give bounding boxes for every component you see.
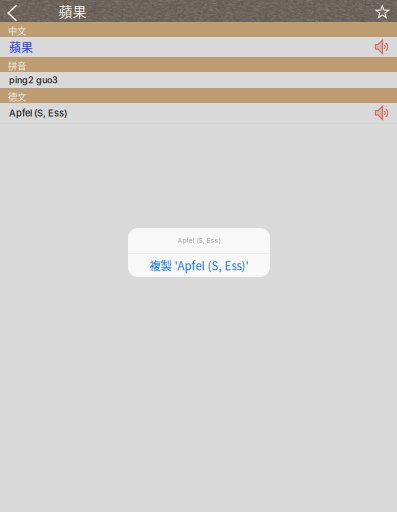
staticText: Apfel (S, Ess)	[177, 236, 220, 245]
button[interactable]: Back	[0, 0, 26, 22]
staticText: 拼音	[8, 59, 26, 72]
staticText: 德文	[8, 90, 26, 103]
staticText: Apfel (S, Ess)	[9, 107, 67, 119]
button[interactable]: Pronounce Apfel (S, Ess)	[369, 103, 395, 123]
button[interactable]: 複製 'Apfel (S, Ess)'	[128, 253, 270, 277]
staticText: 蘋果	[58, 1, 86, 21]
staticText: 複製 'Apfel (S, Ess)'	[149, 257, 248, 273]
staticText: ping2 guo3	[9, 74, 58, 85]
button[interactable]: Pronounce 蘋果	[369, 37, 395, 57]
button[interactable]: Add to favourites	[369, 0, 397, 22]
staticText: 蘋果	[9, 38, 33, 56]
staticText: 中文	[8, 24, 26, 37]
